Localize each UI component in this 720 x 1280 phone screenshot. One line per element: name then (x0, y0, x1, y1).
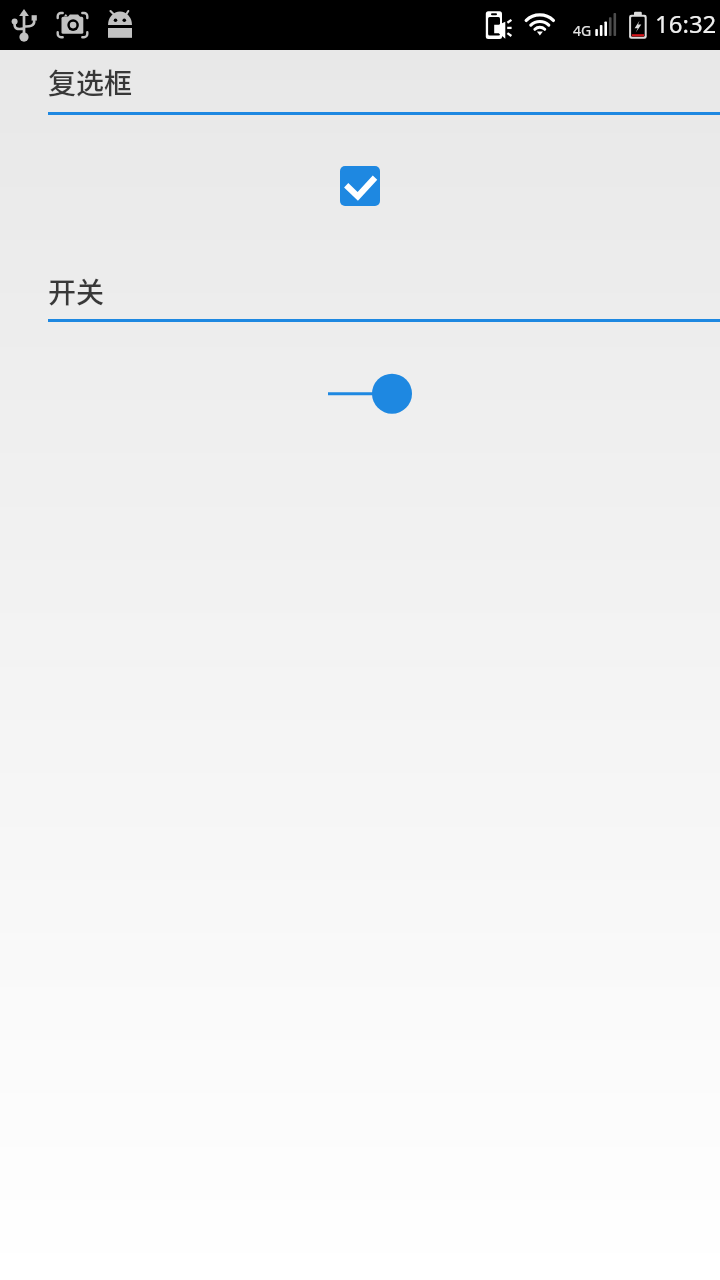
staticText: 16:32 (655, 7, 717, 40)
button[interactable]: Checkbox, checked (340, 166, 380, 206)
staticText: 复选框 (48, 62, 133, 103)
staticText: 4G (573, 21, 592, 40)
staticText: 开关 (48, 271, 105, 312)
button[interactable]: Switch, on (328, 373, 412, 415)
